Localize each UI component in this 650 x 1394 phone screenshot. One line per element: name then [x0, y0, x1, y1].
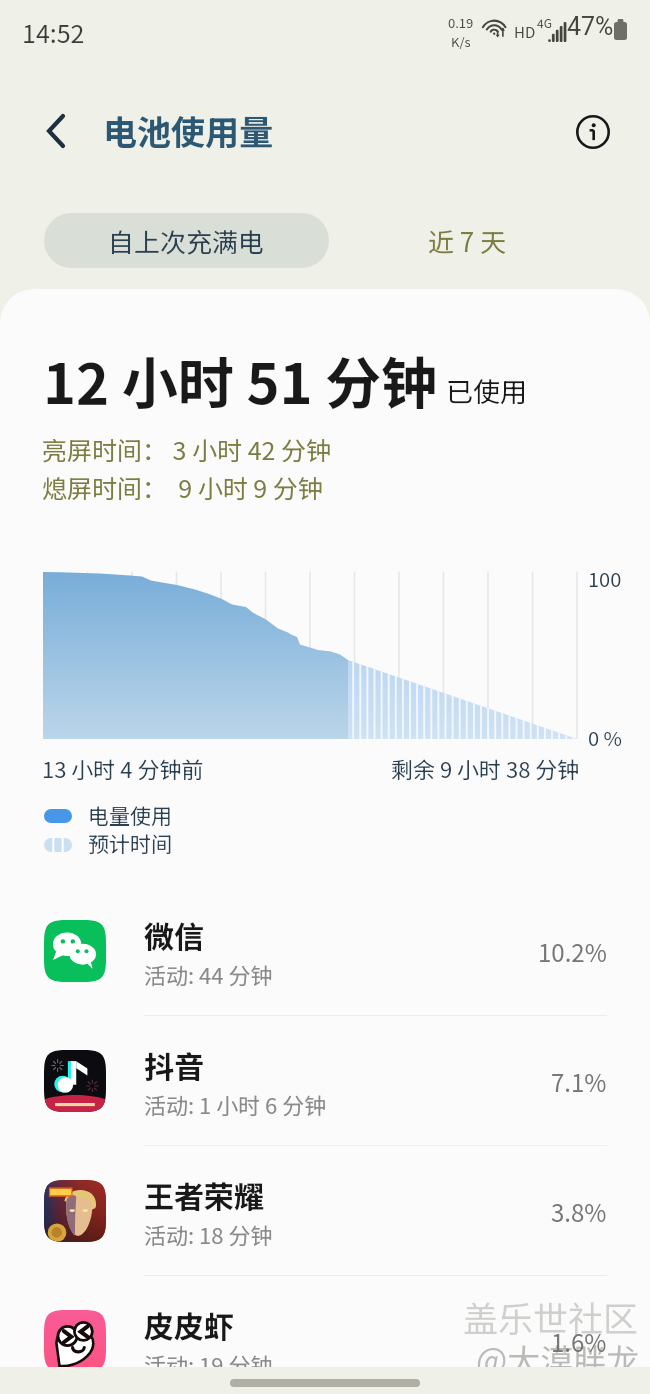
- staticText: 0 %: [588, 723, 622, 752]
- staticText: 抖音: [144, 1043, 204, 1086]
- staticText: 0.19: [448, 13, 474, 32]
- staticText: 100: [588, 564, 622, 593]
- button[interactable]: 近 7 天: [367, 213, 567, 268]
- staticText: 活动: 18 分钟: [144, 1218, 273, 1250]
- staticText: 盖乐世社区: [463, 1291, 639, 1342]
- staticText: 1.6%: [551, 1324, 607, 1359]
- staticText: 47%: [567, 12, 614, 41]
- staticText: 3.8%: [551, 1194, 607, 1229]
- staticText: 活动: 44 分钟: [144, 958, 273, 990]
- button[interactable]: Info: [569, 108, 616, 155]
- staticText: 微信: [144, 913, 204, 956]
- staticText: 熄屏时间： 9 小时 9 分钟: [42, 469, 323, 505]
- staticText: 已使用: [446, 371, 527, 410]
- staticText: 10.2%: [538, 934, 607, 969]
- staticText: 王者荣耀: [144, 1173, 264, 1216]
- staticText: 自上次充满电: [108, 222, 265, 260]
- staticText: HD: [514, 21, 536, 43]
- staticText: 活动: 1 小时 6 分钟: [144, 1088, 327, 1120]
- staticText: 14:52: [22, 14, 85, 50]
- staticText: 活动: 19 分钟: [144, 1348, 273, 1367]
- staticText: @大漠胖龙: [476, 1335, 640, 1367]
- button[interactable]: 王者荣耀: [0, 1146, 650, 1276]
- staticText: 预计时间: [88, 828, 172, 858]
- button[interactable]: Back: [32, 107, 80, 155]
- staticText: K/s: [451, 32, 471, 51]
- staticText: 皮皮虾: [144, 1303, 234, 1346]
- staticText: 亮屏时间： 3 小时 42 分钟: [42, 431, 332, 467]
- staticText: 12 小时 51 分钟: [43, 339, 438, 420]
- button[interactable]: 抖音: [0, 1016, 650, 1146]
- staticText: 电池使用量: [103, 106, 273, 155]
- staticText: 剩余 9 小时 38 分钟: [391, 752, 580, 784]
- staticText: 4G: [537, 14, 552, 31]
- staticText: 电量使用: [88, 800, 172, 830]
- button[interactable]: 微信: [0, 886, 650, 1016]
- staticText: 近 7 天: [428, 222, 507, 260]
- staticText: 7.1%: [551, 1064, 607, 1099]
- button[interactable]: 皮皮虾: [0, 1276, 650, 1367]
- button[interactable]: 自上次充满电: [44, 213, 329, 268]
- staticText: 13 小时 4 分钟前: [42, 752, 204, 784]
